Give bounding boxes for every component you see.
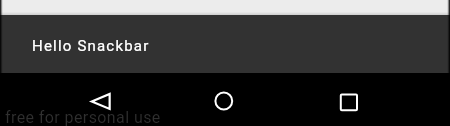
staticText: free for personal use (5, 108, 161, 126)
button[interactable]: Home (200, 77, 248, 125)
button[interactable]: Hello Snackbar (0, 15, 450, 73)
button[interactable]: Back (77, 77, 125, 125)
button[interactable]: Recent apps (325, 78, 373, 126)
staticText: Hello Snackbar (32, 37, 150, 55)
